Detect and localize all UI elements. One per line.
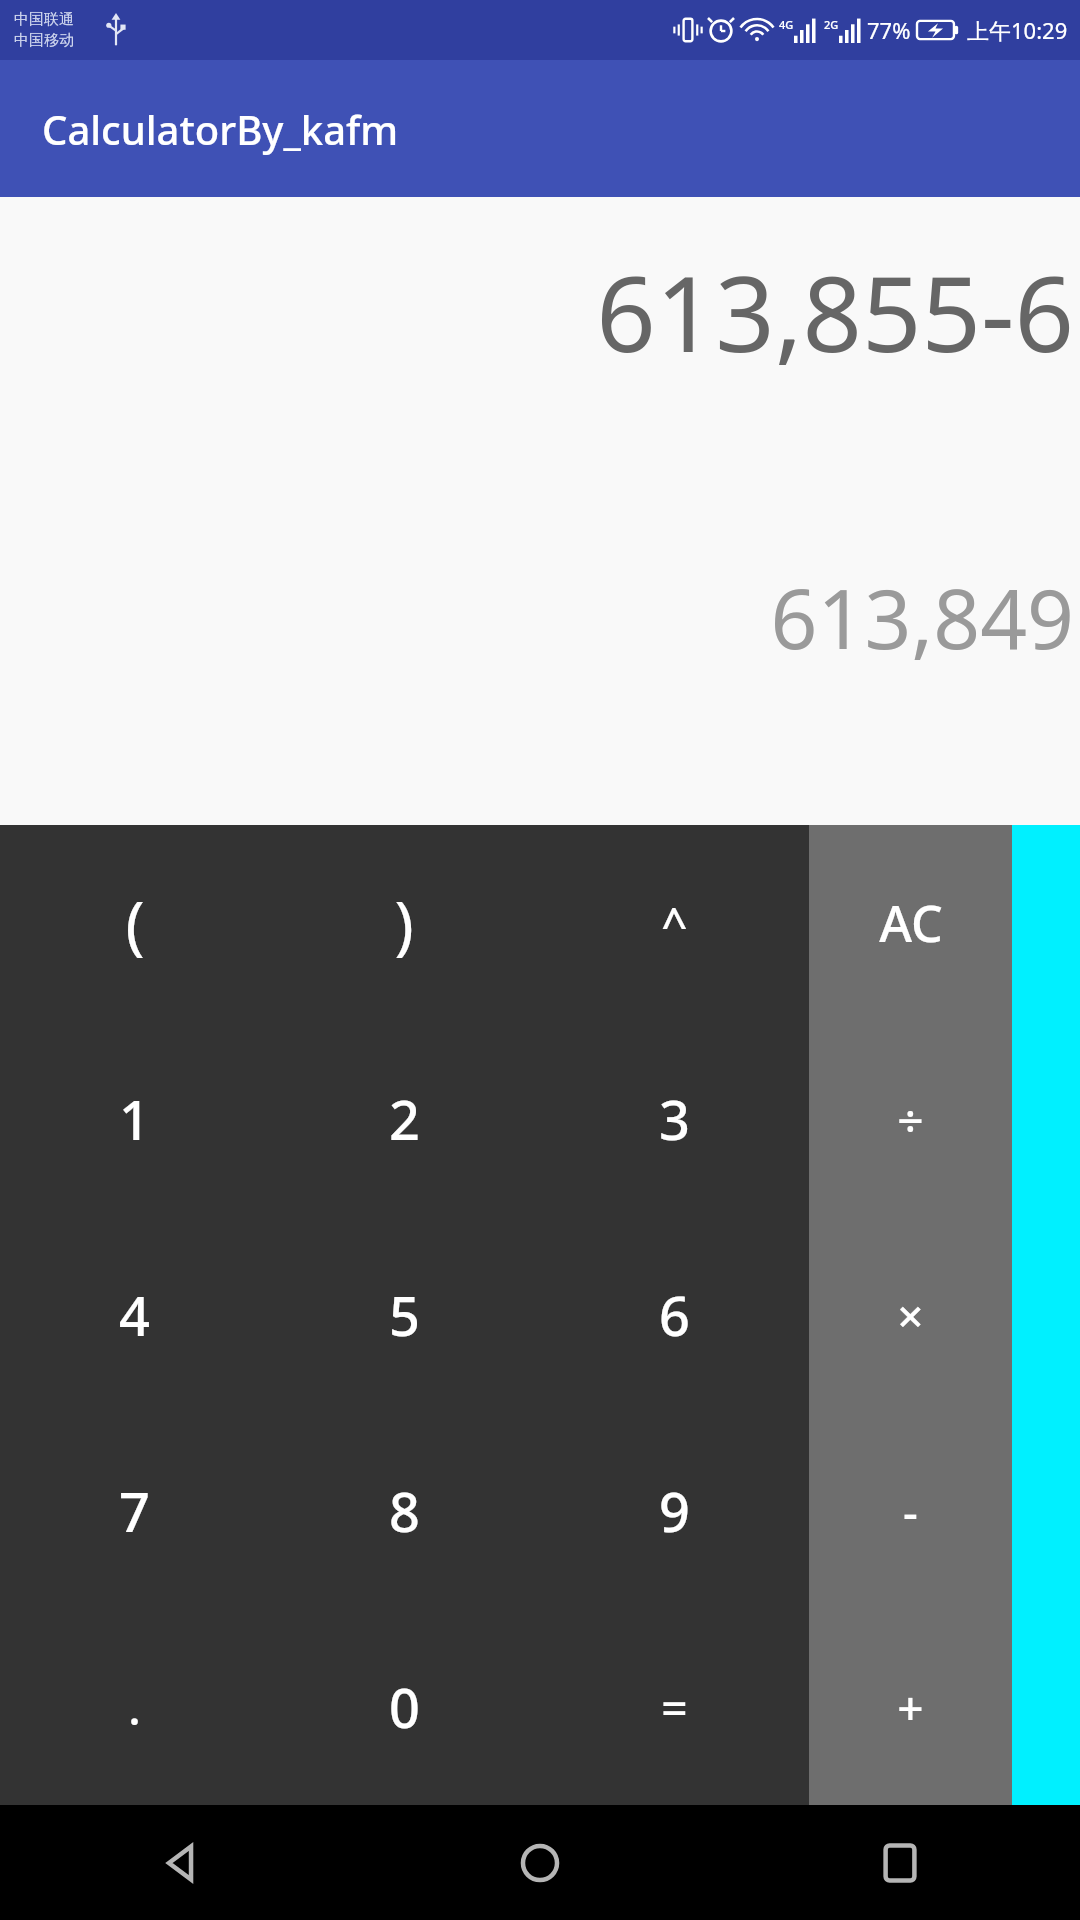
button[interactable]: 9 [539, 1413, 809, 1609]
button[interactable]: 5 [269, 1217, 539, 1413]
staticText: 6 [659, 1278, 690, 1352]
staticText: 9 [659, 1474, 690, 1548]
button[interactable]: × [809, 1217, 1012, 1413]
staticText: 77% [867, 15, 911, 45]
button[interactable]: = [539, 1609, 809, 1805]
button[interactable]: Recent apps [845, 1808, 955, 1918]
staticText: ( [125, 880, 145, 967]
button[interactable]: AC [809, 825, 1012, 1021]
staticText: ÷ [897, 1088, 924, 1151]
button[interactable]: ÷ [809, 1021, 1012, 1217]
button[interactable]: 6 [539, 1217, 809, 1413]
staticText: 0 [389, 1670, 420, 1744]
button[interactable]: Home [485, 1808, 595, 1918]
staticText: 上午10:29 [967, 15, 1068, 45]
button[interactable]: 2 [269, 1021, 539, 1217]
button[interactable]: ^ [539, 825, 809, 1021]
staticText: 1 [119, 1082, 150, 1156]
button[interactable]: 0 [269, 1609, 539, 1805]
staticText: × [897, 1284, 924, 1347]
button[interactable]: ) [269, 825, 539, 1021]
staticText: 3 [659, 1082, 690, 1156]
staticText: 2 [389, 1082, 420, 1156]
button[interactable]: 4 [0, 1217, 269, 1413]
staticText: 7 [119, 1474, 150, 1548]
staticText: 8 [389, 1474, 420, 1548]
staticText: 613,855-6 [596, 241, 1074, 383]
staticText: ^ [661, 892, 688, 955]
button[interactable]: 7 [0, 1413, 269, 1609]
staticText: 5 [389, 1278, 420, 1352]
staticText: CalculatorBy_kafm [42, 102, 399, 156]
staticText: = [661, 1676, 688, 1739]
button[interactable]: + [809, 1609, 1012, 1805]
staticText: 4G [779, 17, 794, 32]
button[interactable]: . [0, 1609, 269, 1805]
button[interactable]: 3 [539, 1021, 809, 1217]
button[interactable]: 8 [269, 1413, 539, 1609]
button[interactable]: - [809, 1413, 1012, 1609]
button[interactable]: ( [0, 825, 269, 1021]
staticText: . [128, 1676, 141, 1739]
staticText: 613,849 [770, 561, 1074, 673]
button[interactable]: 1 [0, 1021, 269, 1217]
staticText: - [903, 1480, 918, 1543]
staticText: 中国移动 [14, 31, 74, 50]
staticText: AC [879, 889, 943, 957]
staticText: 2G [824, 17, 839, 32]
staticText: ) [394, 880, 414, 967]
staticText: 4 [119, 1278, 150, 1352]
staticText: 中国联通 [14, 10, 74, 29]
staticText: + [897, 1676, 924, 1739]
button[interactable]: Back [125, 1808, 235, 1918]
